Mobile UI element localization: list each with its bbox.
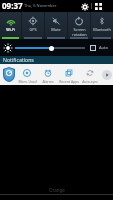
button[interactable]: Security [3,67,15,82]
button[interactable]: Settings [79,1,90,12]
button[interactable]: Mute [45,12,67,39]
staticText: Bluetooth [93,27,111,32]
button[interactable]: Alarms [37,64,58,85]
staticText: Recent Apps [59,79,79,84]
staticText: Orange [49,187,65,193]
staticText: Wi-Fi [6,27,15,32]
button[interactable]: Recent Apps [58,64,79,85]
button[interactable]: Bluetooth [91,12,113,39]
button[interactable]: More [102,70,112,80]
button[interactable] [15,45,85,51]
button[interactable]: Edit quick settings [93,1,104,12]
staticText: Mem. Used [18,79,37,84]
staticText: Thu, 6 November [24,3,57,8]
button[interactable]: Wi-Fi [0,12,21,39]
staticText: Screen rotation [72,27,87,37]
button[interactable]: Screen rotation [68,12,90,39]
staticText: 09:37 [2,0,23,11]
staticText: Alarms [42,79,54,84]
staticText: Auto [99,45,108,50]
staticText: GPS [29,27,37,32]
button[interactable]: Brightness [3,43,13,53]
button[interactable]: Mem. Used [17,64,37,85]
staticText: Notifications [3,56,34,63]
button[interactable]: Auto-sync [79,64,100,85]
staticText: Mute [51,27,61,32]
button[interactable]: GPS [22,12,44,39]
staticText: Auto-sync [82,79,98,84]
